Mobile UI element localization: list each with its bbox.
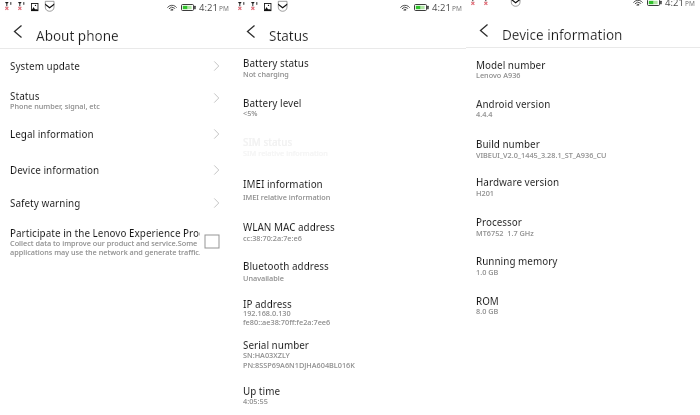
staticText: Device information xyxy=(10,164,100,177)
staticText: 1.0 GB xyxy=(476,267,499,277)
button[interactable] xyxy=(0,154,233,188)
button[interactable]: Open xyxy=(205,194,224,212)
staticText: PM xyxy=(685,0,695,8)
button[interactable] xyxy=(233,49,466,89)
button[interactable] xyxy=(0,188,233,218)
staticText: MT6752 1.7 GHz xyxy=(476,228,534,238)
button[interactable] xyxy=(466,88,700,128)
button[interactable] xyxy=(233,331,466,378)
staticText: Hardware version xyxy=(476,176,560,189)
button[interactable]: Back xyxy=(236,21,264,47)
staticText: Participate in the Lenovo Experience Pro… xyxy=(10,227,200,240)
staticText: H201 xyxy=(476,188,494,198)
staticText: cc:38:70:2a:7e:e6 xyxy=(243,233,302,243)
staticText: 192.168.0.130 xyxy=(243,308,291,318)
staticText: 4:21 xyxy=(199,1,218,14)
button[interactable] xyxy=(0,49,233,79)
button[interactable] xyxy=(233,253,466,290)
staticText: Battery status xyxy=(243,57,309,70)
staticText: Not charging xyxy=(243,69,289,79)
staticText: Unavailable xyxy=(243,273,284,283)
staticText: 4:21 xyxy=(432,1,451,14)
staticText: Legal information xyxy=(10,128,94,141)
button[interactable] xyxy=(233,378,466,415)
staticText: Status xyxy=(269,27,309,45)
button[interactable] xyxy=(466,286,700,326)
button[interactable] xyxy=(466,49,700,88)
staticText: ROM xyxy=(476,295,499,308)
button[interactable] xyxy=(233,213,466,253)
button[interactable]: Back xyxy=(3,21,31,47)
staticText: 4.4.4 xyxy=(476,109,493,119)
staticText: WLAN MAC address xyxy=(243,221,335,234)
button[interactable]: Participate checkbox xyxy=(205,235,219,248)
staticText: Lenovo A936 xyxy=(476,70,521,80)
button[interactable] xyxy=(0,118,233,154)
staticText: Device information xyxy=(502,26,623,44)
staticText: Safety warning xyxy=(10,197,81,210)
staticText: Up time xyxy=(243,385,281,398)
button[interactable] xyxy=(233,290,466,331)
staticText: Bluetooth address xyxy=(243,260,329,273)
staticText: Build number xyxy=(476,138,540,151)
staticText: Collect data to improve our product and … xyxy=(10,238,198,248)
staticText: SIM status xyxy=(243,136,293,149)
staticText: IP address xyxy=(243,298,292,311)
button[interactable] xyxy=(233,170,466,213)
staticText: Battery level xyxy=(243,97,302,110)
staticText: PM xyxy=(219,4,229,13)
staticText: 8.0 GB xyxy=(476,306,499,316)
staticText: Phone number, signal, etc xyxy=(10,101,100,111)
button[interactable] xyxy=(466,207,700,246)
staticText: Serial number xyxy=(243,339,310,352)
button[interactable] xyxy=(0,79,233,118)
staticText: Processor xyxy=(476,216,522,229)
button[interactable]: Open xyxy=(205,125,224,143)
button[interactable]: Open xyxy=(205,89,224,107)
staticText: PM xyxy=(452,4,462,13)
staticText: Running memory xyxy=(476,255,558,268)
staticText: IMEI information xyxy=(243,178,323,191)
button[interactable] xyxy=(466,246,700,286)
staticText: PN:8SSP69A6N1DJHA604BL016K xyxy=(243,360,355,370)
button[interactable]: Open xyxy=(205,57,224,75)
staticText: 4:21 xyxy=(665,0,684,9)
staticText: applications may use the network and gen… xyxy=(10,247,200,257)
staticText: IMEI relative information xyxy=(243,192,331,202)
button[interactable]: Back xyxy=(469,20,497,46)
button[interactable]: Open xyxy=(205,161,224,179)
staticText: 4:05:55 xyxy=(243,396,268,406)
staticText: About phone xyxy=(36,27,119,45)
staticText: SIM relative information xyxy=(243,148,328,158)
staticText: VIBEUI_V2.0_1445_3.28.1_ST_A936_CU xyxy=(476,150,607,160)
button[interactable] xyxy=(466,128,700,166)
staticText: Status xyxy=(10,90,40,103)
button[interactable] xyxy=(233,89,466,129)
staticText: Android version xyxy=(476,98,551,111)
staticText: System update xyxy=(10,60,80,73)
staticText: <5% xyxy=(243,108,258,118)
button[interactable] xyxy=(0,218,233,260)
button[interactable] xyxy=(466,166,700,207)
staticText: fe80::ae38:70ff:fe2a:7ee6 xyxy=(243,317,331,327)
staticText: Model number xyxy=(476,59,546,72)
staticText: SN:HA03XZLY xyxy=(243,350,290,360)
